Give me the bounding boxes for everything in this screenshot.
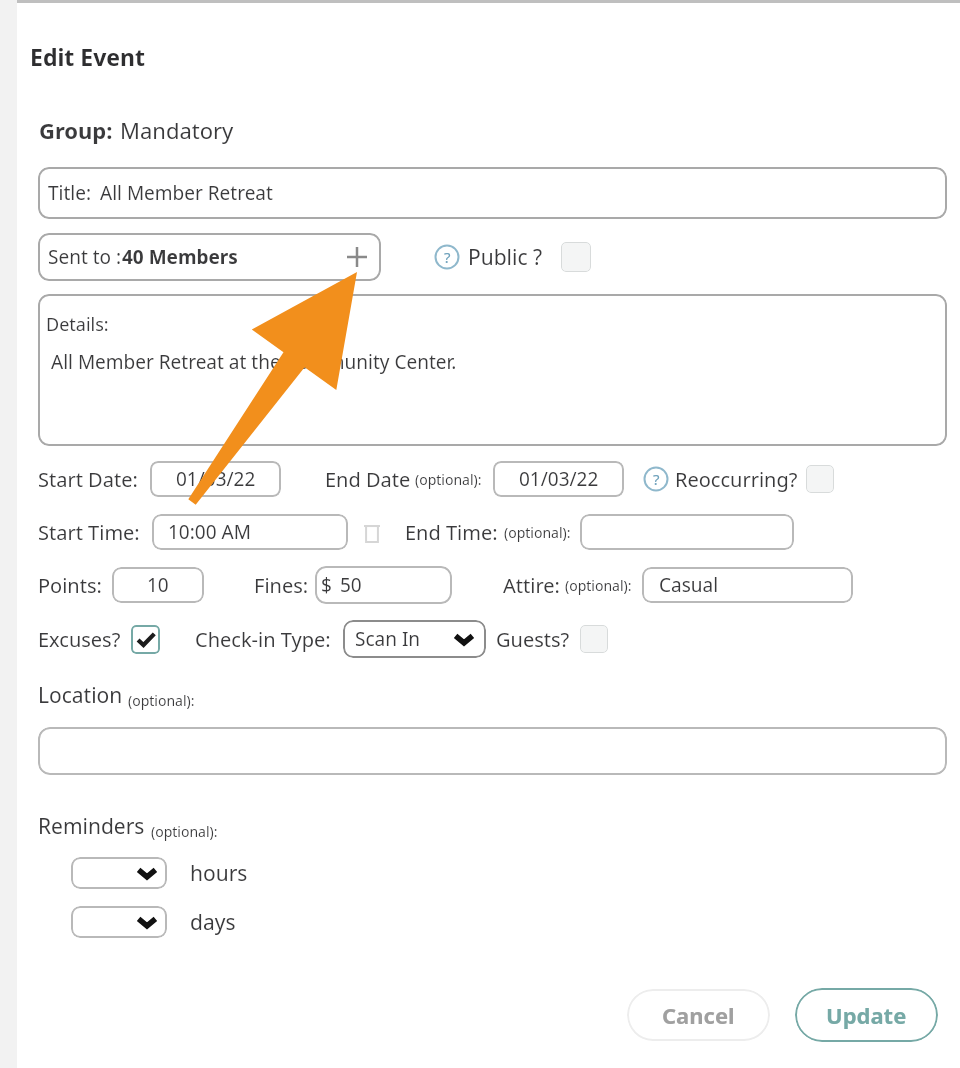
button[interactable]: 10:00 AM — [152, 514, 348, 550]
staticText: Group: — [39, 115, 113, 145]
staticText: Mandatory — [120, 115, 234, 145]
staticText: 10 — [147, 572, 169, 598]
button[interactable]: Cancel — [627, 989, 770, 1041]
staticText: Casual — [659, 572, 719, 598]
button[interactable]: 10 — [112, 567, 204, 603]
button[interactable]: Scan In — [343, 620, 486, 658]
staticText: Scan In — [355, 626, 421, 652]
button[interactable]: Toggle — [561, 242, 591, 272]
button[interactable]: Sent to : — [38, 233, 381, 281]
staticText: Guests? — [496, 626, 570, 653]
staticText: 01/03/22 — [519, 466, 599, 492]
staticText: Attire: — [503, 572, 560, 599]
staticText: End Date — [325, 466, 411, 493]
button[interactable] — [71, 857, 167, 889]
button[interactable]: Delete time — [361, 521, 383, 543]
staticText: ? — [653, 469, 660, 489]
staticText: Sent to : — [48, 244, 122, 270]
button[interactable]: Title: — [38, 167, 947, 219]
button[interactable]: Toggle — [806, 465, 834, 493]
staticText: days — [190, 908, 236, 937]
button[interactable]: Help — [643, 466, 669, 492]
staticText: Reminders — [38, 812, 145, 841]
staticText: All Member Retreat — [100, 180, 273, 206]
button[interactable]: Help — [434, 244, 460, 270]
staticText: (optional): — [128, 691, 195, 710]
staticText: Public ? — [468, 243, 543, 272]
button[interactable]: Details: — [38, 294, 947, 446]
staticText: Start Date: — [38, 466, 138, 493]
staticText: Title: — [48, 180, 92, 206]
staticText: (optional): — [504, 523, 571, 542]
staticText: Cancel — [662, 1000, 735, 1030]
button[interactable]: Excuses checkbox — [131, 625, 160, 654]
button[interactable]: Toggle — [580, 625, 608, 653]
button[interactable]: 01/03/22 — [150, 461, 281, 497]
staticText: Check-in Type: — [195, 626, 331, 653]
staticText: End Time: — [405, 519, 498, 546]
staticText: Fines: — [254, 572, 309, 599]
staticText: Edit Event — [30, 41, 145, 72]
button[interactable] — [580, 514, 794, 550]
button[interactable]: $ — [315, 566, 452, 604]
button[interactable] — [71, 906, 167, 938]
staticText: Location — [38, 681, 123, 710]
staticText: 40 Members — [122, 244, 238, 270]
staticText: $ — [321, 572, 332, 598]
staticText: Details: — [46, 312, 109, 337]
staticText: Start Time: — [38, 519, 140, 546]
button[interactable]: 01/03/22 — [493, 461, 624, 497]
staticText: 50 — [340, 572, 362, 598]
button[interactable]: Update — [795, 988, 938, 1042]
staticText: All Member Retreat at the Community Cent… — [51, 349, 457, 375]
button[interactable] — [38, 727, 947, 775]
staticText: ? — [444, 247, 451, 267]
staticText: (optional): — [151, 822, 218, 841]
staticText: (optional): — [415, 470, 482, 489]
staticText: 10:00 AM — [168, 519, 251, 545]
staticText: (optional): — [565, 576, 632, 595]
button[interactable]: Casual — [642, 567, 853, 603]
staticText: Points: — [38, 572, 102, 599]
staticText: 01/03/22 — [176, 466, 256, 492]
staticText: Update — [826, 1000, 907, 1030]
staticText: Excuses? — [38, 626, 121, 653]
staticText: hours — [190, 859, 248, 888]
staticText: Reoccurring? — [675, 466, 798, 493]
